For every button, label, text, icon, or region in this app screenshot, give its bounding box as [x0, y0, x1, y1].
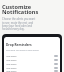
staticText: Choose the alerts you want to see, mute …: [2, 17, 38, 30]
staticText: New drops: [6, 55, 54, 58]
staticText: New drops: [6, 70, 54, 72]
staticText: New drops: [6, 67, 54, 70]
staticText: Drop Reminders: [6, 43, 32, 47]
staticText: Pick what you want to hear about: [6, 49, 39, 52]
staticText: New drops: [6, 59, 54, 62]
staticText: Customize Notifications: [2, 3, 39, 16]
staticText: New drops: [6, 63, 54, 66]
